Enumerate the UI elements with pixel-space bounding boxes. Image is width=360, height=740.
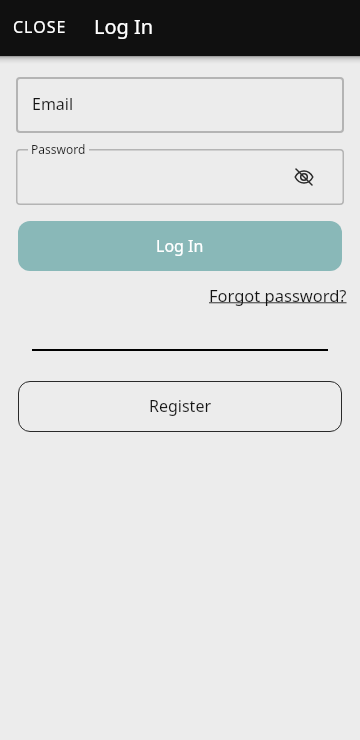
staticText: Forgot password? (209, 284, 347, 306)
staticText: Password (31, 141, 86, 157)
button[interactable]: Password (16, 149, 344, 205)
button[interactable]: Forgot password? (209, 284, 347, 306)
staticText: CLOSE (13, 16, 67, 38)
staticText: Log In (156, 235, 204, 257)
staticText: Log In (94, 13, 154, 40)
button[interactable]: Email (16, 77, 344, 133)
staticText: Email (32, 93, 74, 115)
button[interactable]: Register (18, 381, 342, 432)
staticText: Register (149, 395, 212, 417)
button[interactable]: CLOSE (5, 7, 75, 49)
button[interactable]: Log In (18, 221, 342, 271)
button[interactable]: Show password (282, 155, 326, 199)
